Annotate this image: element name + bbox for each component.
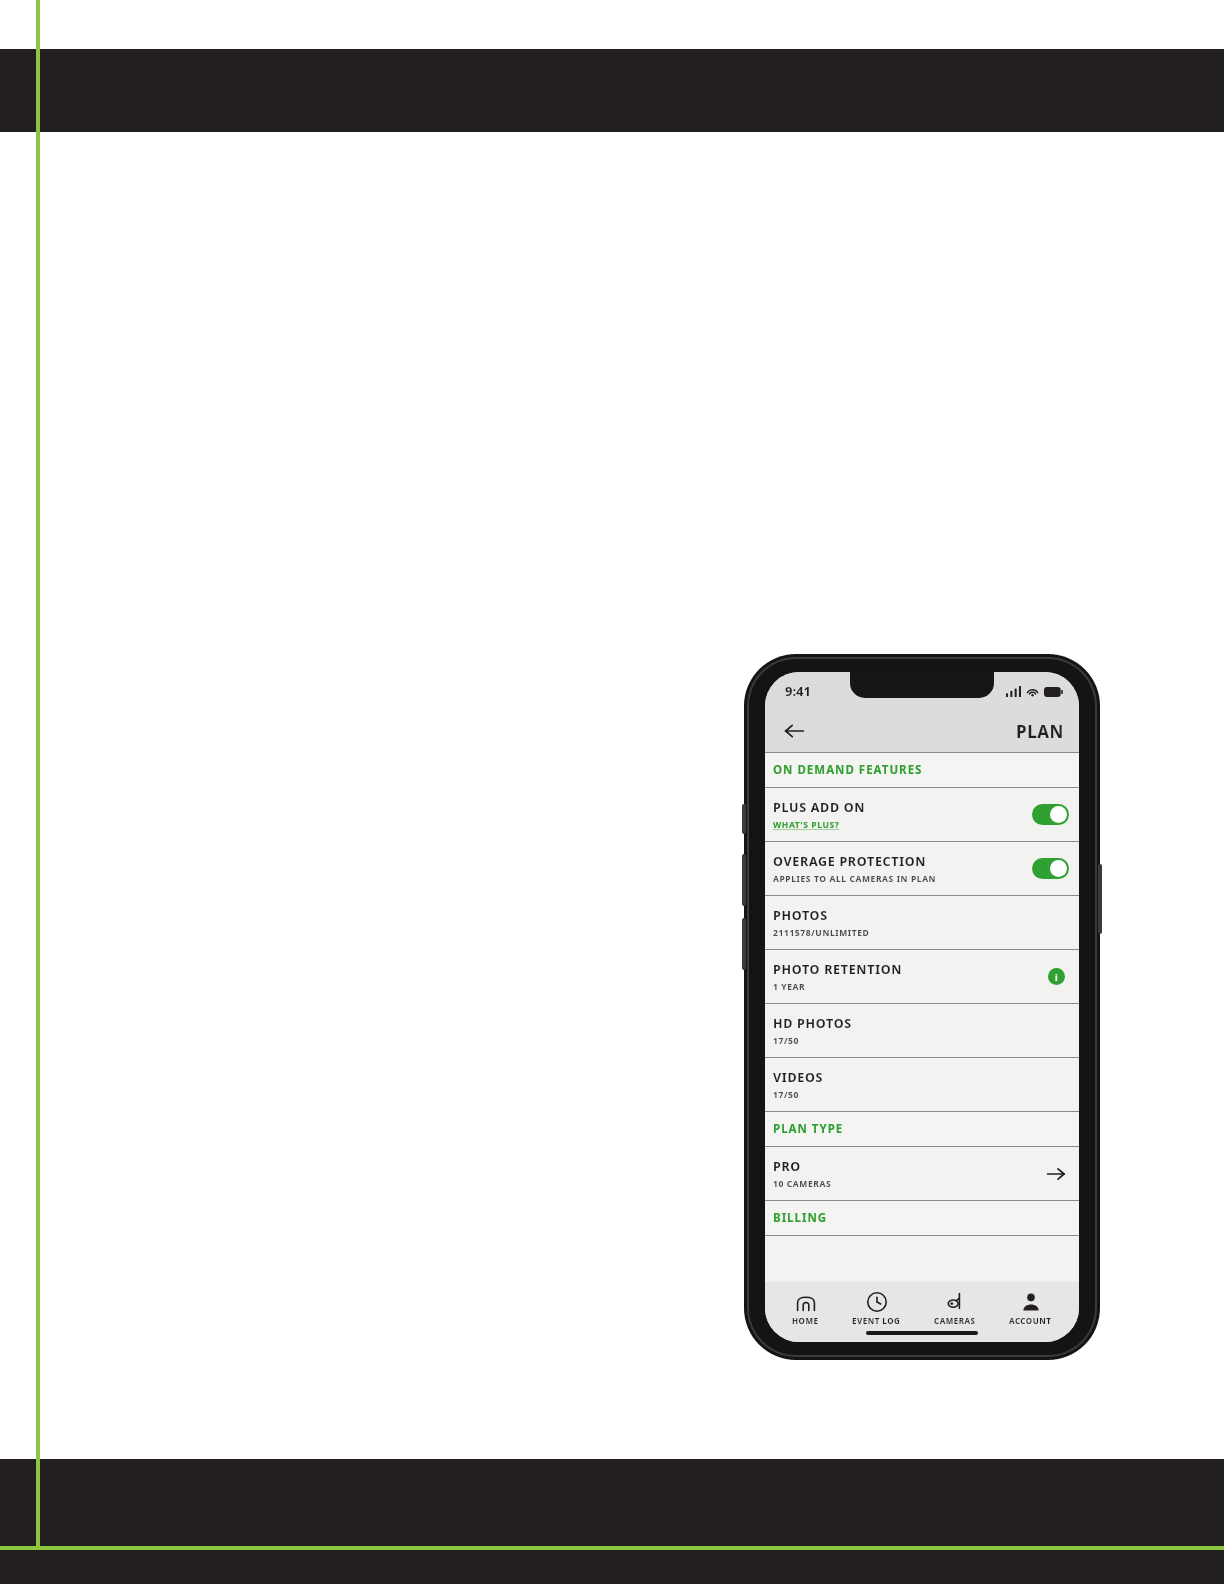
button[interactable]: EVENT LOG (846, 1290, 907, 1328)
button[interactable]: VIDEOS (765, 1058, 1079, 1111)
button[interactable]: Toggle (1032, 804, 1069, 825)
staticText: CAMERAS (934, 1315, 976, 1326)
button[interactable]: PRO (765, 1147, 1079, 1200)
staticText: PHOTOS (773, 907, 828, 924)
staticText: PLAN TYPE (773, 1121, 844, 1137)
button[interactable]: PHOTOS (765, 896, 1079, 949)
staticText: PLAN (1016, 720, 1065, 743)
staticText: ACCOUNT (1009, 1315, 1052, 1326)
button[interactable]: HD PHOTOS (765, 1004, 1079, 1057)
button[interactable]: PLUS ADD ON (765, 788, 1079, 841)
staticText: HOME (792, 1315, 819, 1326)
button[interactable]: PHOTO RETENTION (765, 950, 1079, 1003)
staticText: OVERAGE PROTECTION (773, 853, 927, 870)
button[interactable]: CAMERAS (928, 1290, 982, 1328)
other: Info (1048, 968, 1065, 985)
button[interactable]: ACCOUNT (1003, 1290, 1058, 1328)
staticText: 9:41 (785, 682, 811, 700)
button[interactable]: Back (777, 714, 811, 748)
staticText: PHOTO RETENTION (773, 961, 903, 978)
other: Open plan details (1045, 1163, 1067, 1185)
button[interactable]: Toggle (1032, 858, 1069, 879)
button[interactable]: OVERAGE PROTECTION (765, 842, 1079, 895)
staticText: ON DEMAND FEATURES (773, 762, 923, 778)
staticText: 17/50 (773, 1089, 799, 1101)
staticText: 2111578/UNLIMITED (773, 927, 870, 939)
staticText: 1 YEAR (773, 981, 806, 993)
staticText: PRO (773, 1158, 801, 1175)
staticText: HD PHOTOS (773, 1015, 852, 1032)
staticText: EVENT LOG (852, 1315, 901, 1326)
staticText: BILLING (773, 1210, 828, 1226)
button[interactable]: HOME (786, 1290, 825, 1328)
staticText: VIDEOS (773, 1069, 824, 1086)
staticText: WHAT'S PLUS? (773, 819, 840, 831)
staticText: APPLIES TO ALL CAMERAS IN PLAN (773, 873, 937, 885)
staticText: PLUS ADD ON (773, 799, 866, 816)
staticText: 10 CAMERAS (773, 1178, 832, 1190)
staticText: i (1055, 971, 1058, 983)
staticText: 17/50 (773, 1035, 799, 1047)
